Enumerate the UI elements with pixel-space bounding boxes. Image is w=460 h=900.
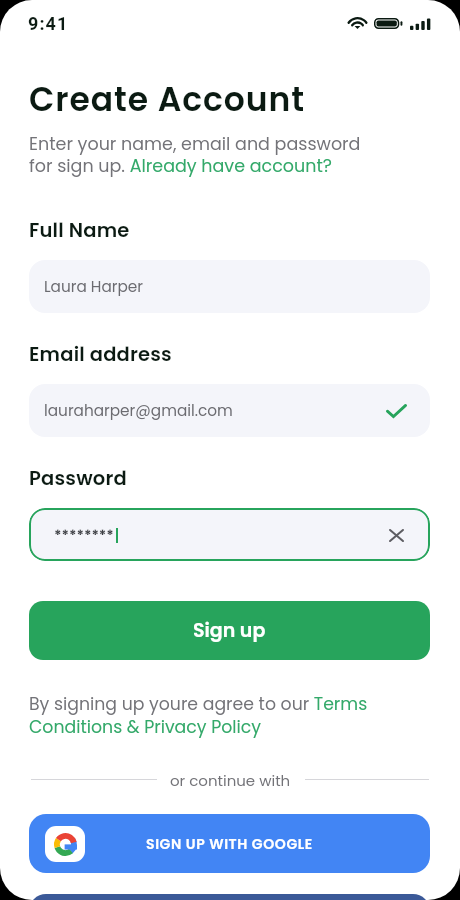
staticText: Full Name [29, 217, 130, 244]
staticText: Email address [29, 341, 172, 368]
staticText: Enter your name, email and password for … [29, 132, 361, 178]
staticText: or continue with [170, 770, 291, 788]
staticText: Laura Harper [44, 276, 144, 297]
button[interactable]: Clear password [381, 520, 411, 550]
other: Cellular signal [410, 18, 431, 30]
button[interactable]: ******** [29, 508, 430, 561]
other: Wi-Fi [348, 17, 367, 29]
staticText: ******** [54, 525, 114, 545]
button[interactable]: SIGN UP WITH GOOGLE [29, 814, 430, 873]
other: Battery [374, 18, 403, 29]
button[interactable]: Sign up [29, 601, 430, 660]
button[interactable]: lauraharper@gmail.com [29, 384, 430, 437]
staticText: lauraharper@gmail.com [44, 400, 233, 421]
staticText: 9:41 [28, 13, 69, 34]
button[interactable]: Email verified [381, 396, 411, 426]
button[interactable]: Laura Harper [29, 260, 430, 313]
staticText: SIGN UP WITH GOOGLE [146, 834, 313, 854]
button[interactable] [29, 894, 430, 900]
staticText: Sign up [193, 617, 266, 644]
staticText: By signing up youre agree to our Terms C… [29, 692, 442, 739]
staticText: Password [29, 465, 127, 492]
staticText: Create Account [29, 76, 305, 122]
